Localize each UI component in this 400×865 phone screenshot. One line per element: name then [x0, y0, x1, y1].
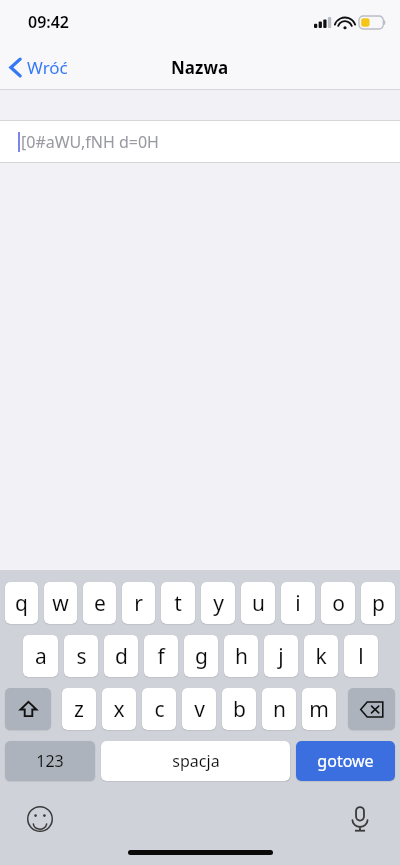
staticText: g	[195, 642, 208, 671]
button[interactable]: o	[321, 582, 355, 624]
button[interactable]: i	[281, 582, 315, 624]
staticText: t	[174, 589, 182, 618]
button[interactable]: f	[144, 635, 178, 677]
staticText: z	[74, 695, 84, 724]
staticText: d	[115, 642, 128, 671]
staticText: 09:42	[28, 11, 70, 33]
staticText: b	[233, 695, 246, 724]
button[interactable]: Wróć	[0, 50, 80, 85]
staticText: c	[154, 695, 165, 724]
button[interactable]: h	[224, 635, 258, 677]
staticText: a	[35, 642, 47, 671]
button[interactable]: m	[302, 688, 336, 730]
button[interactable]: g	[184, 635, 218, 677]
button[interactable]: [0#aWU,fNH d=0H	[0, 121, 400, 162]
staticText: o	[332, 589, 345, 618]
button[interactable]: l	[344, 635, 378, 677]
button[interactable]: x	[102, 688, 136, 730]
staticText: spacja	[172, 750, 220, 772]
staticText: x	[113, 695, 125, 724]
button[interactable]: e	[83, 582, 116, 624]
button[interactable]: n	[262, 688, 296, 730]
staticText: gotowe	[317, 750, 374, 772]
button[interactable]: s	[64, 635, 98, 677]
staticText: f	[157, 642, 165, 671]
staticText: u	[252, 589, 265, 618]
button[interactable]: z	[62, 688, 96, 730]
staticText: k	[315, 642, 327, 671]
staticText: w	[52, 589, 69, 618]
staticText: l	[358, 642, 364, 671]
staticText: m	[309, 695, 329, 724]
button[interactable]: q	[5, 582, 38, 624]
staticText: q	[15, 589, 28, 618]
staticText: r	[134, 589, 143, 618]
button[interactable]: t	[161, 582, 195, 624]
button[interactable]: r	[122, 582, 155, 624]
button[interactable]: Backspace	[348, 688, 395, 730]
button[interactable]: Shift	[5, 688, 51, 730]
staticText: e	[94, 589, 106, 618]
button[interactable]: p	[361, 582, 395, 624]
button[interactable]: 123	[5, 741, 95, 781]
button[interactable]: Dictation	[342, 801, 378, 837]
button[interactable]: b	[222, 688, 256, 730]
staticText: p	[372, 589, 385, 618]
button[interactable]: k	[304, 635, 338, 677]
staticText: [0#aWU,fNH d=0H	[21, 131, 159, 153]
staticText: Nazwa	[171, 56, 229, 79]
button[interactable]: w	[44, 582, 77, 624]
button[interactable]: j	[264, 635, 298, 677]
staticText: n	[273, 695, 286, 724]
button[interactable]: u	[241, 582, 275, 624]
button[interactable]: a	[23, 635, 58, 677]
staticText: 123	[36, 750, 64, 772]
staticText: j	[278, 642, 284, 671]
staticText: h	[235, 642, 248, 671]
button[interactable]: y	[201, 582, 235, 624]
button[interactable]: Emoji	[22, 801, 58, 837]
button[interactable]: gotowe	[296, 741, 395, 781]
button[interactable]: c	[142, 688, 176, 730]
staticText: y	[213, 589, 224, 618]
button[interactable]: d	[104, 635, 138, 677]
button[interactable]: spacja	[101, 741, 290, 781]
staticText: i	[295, 589, 301, 618]
staticText: s	[76, 642, 87, 671]
button[interactable]: v	[182, 688, 216, 730]
staticText: v	[194, 695, 205, 724]
staticText: Wróć	[27, 56, 68, 79]
